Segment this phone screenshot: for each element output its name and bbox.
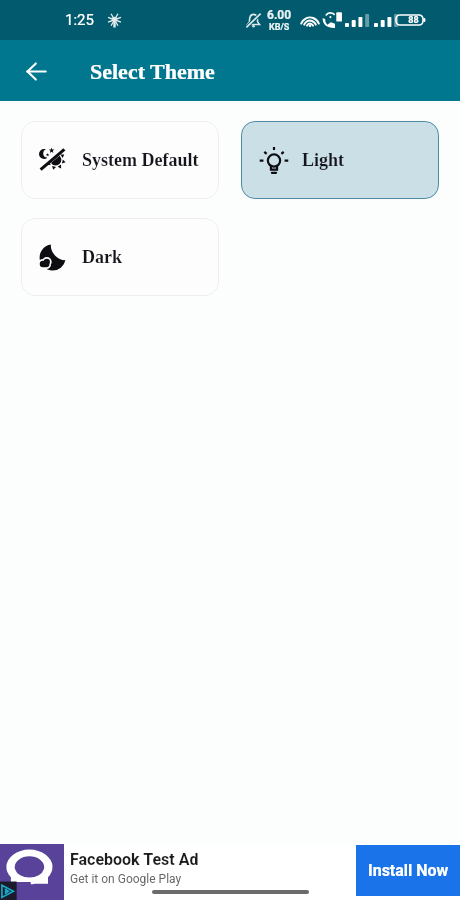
staticText: Facebook Test Ad bbox=[70, 850, 199, 869]
staticText: Light bbox=[302, 150, 345, 170]
button[interactable]: Back bbox=[13, 48, 59, 94]
button[interactable]: Install Now bbox=[356, 845, 460, 896]
staticText: Select Theme bbox=[90, 59, 215, 83]
staticText: 1:25 bbox=[65, 11, 94, 29]
button[interactable]: Light bbox=[241, 121, 439, 199]
button[interactable]: System Default bbox=[21, 121, 219, 199]
staticText: Get it on Google Play bbox=[70, 872, 182, 886]
staticText: 88 bbox=[402, 15, 425, 26]
staticText: 6.00 bbox=[267, 8, 292, 22]
staticText: Dark bbox=[82, 247, 122, 267]
staticText: KB/S bbox=[269, 22, 290, 33]
button[interactable]: Dark bbox=[21, 218, 219, 296]
staticText: Install Now bbox=[368, 861, 449, 880]
staticText: System Default bbox=[82, 150, 199, 170]
